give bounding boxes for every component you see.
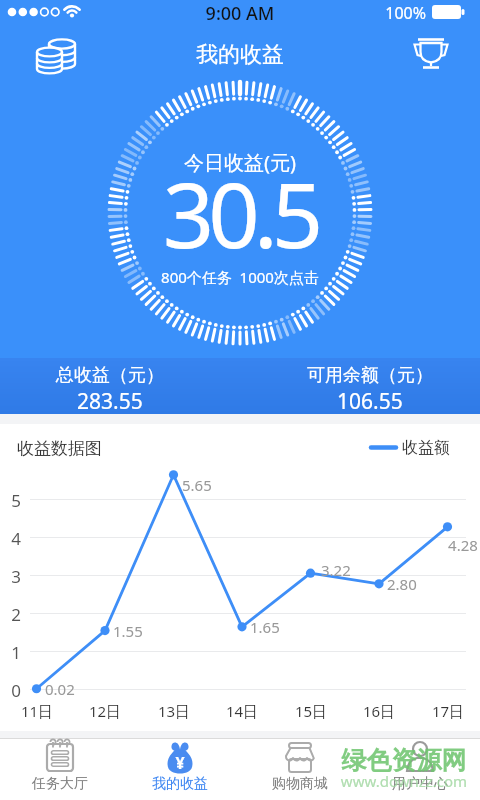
staticText: 我的收益 [152,775,208,793]
staticText: 3 [6,565,26,588]
staticText: 购物商城 [272,775,328,793]
staticText: 5 [6,489,26,512]
button[interactable]: 任务大厅 [0,739,120,800]
staticText: 总收益（元） [56,364,164,387]
staticText: 2 [6,603,26,626]
button[interactable]: 总收益（元） [0,358,220,414]
staticText: 今日收益(元) [0,149,480,176]
button[interactable]: 用户中心 [360,739,480,800]
staticText: 0 [6,679,26,702]
button[interactable] [409,30,453,74]
staticText: 1.65 [250,617,300,637]
button[interactable]: 购物商城 [240,739,360,800]
button[interactable] [34,32,78,76]
staticText: 4.28 [438,535,480,555]
staticText: 14日 [217,701,267,721]
staticText: 100% [356,2,426,24]
staticText: 2.80 [387,574,437,594]
staticText: ¥ [163,752,197,774]
staticText: 17日 [423,701,473,721]
staticText: 5.65 [182,475,232,495]
staticText: 15日 [286,701,336,721]
staticText: 1.55 [113,621,163,641]
staticText: 11日 [12,701,62,721]
staticText: 0.02 [45,679,95,699]
button[interactable]: ¥ [120,739,240,800]
staticText: 可用余额（元） [307,364,433,387]
staticText: 800个任务 1000次点击 [0,267,480,287]
staticText: 9:00 AM [0,1,480,25]
staticText: 4 [6,527,26,550]
staticText: 收益数据图 [17,438,137,459]
staticText: 16日 [354,701,404,721]
staticText: 1 [6,641,26,664]
staticText: www.downzz.com [340,771,468,789]
staticText: 任务大厅 [32,775,88,793]
staticText: 283.55 [77,387,143,414]
staticText: 绿色资源网 [340,745,468,772]
staticText: 13日 [149,701,199,721]
staticText: 我的收益 [0,41,480,69]
staticText: 106.55 [337,387,403,414]
button[interactable]: 可用余额（元） [260,358,480,414]
staticText: 收益额 [402,438,462,458]
staticText: 3.22 [321,560,371,580]
staticText: 30.5 [0,152,480,258]
staticText: 12日 [80,701,130,721]
staticText: 用户中心 [392,775,448,793]
